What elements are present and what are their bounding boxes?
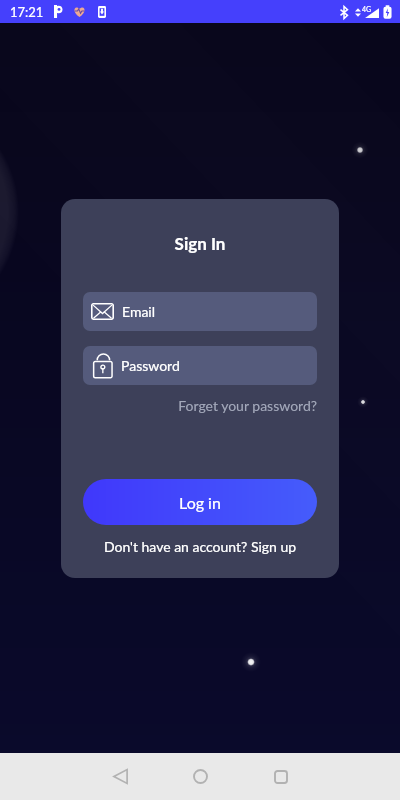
staticText: Log in <box>179 493 221 512</box>
staticText: 17:21 <box>10 4 44 20</box>
button[interactable]: Recent apps <box>249 753 313 800</box>
button[interactable]: Back <box>88 753 152 800</box>
staticText: Password <box>121 357 180 374</box>
button[interactable]: Home <box>168 753 232 800</box>
staticText: 4G <box>362 5 372 13</box>
button[interactable]: Don't have an account? Sign up <box>61 538 339 555</box>
button[interactable]: Forget your password? <box>83 397 317 414</box>
staticText: Sign In <box>61 233 339 253</box>
button[interactable]: Log in <box>83 479 317 525</box>
staticText: Email <box>122 303 156 320</box>
button[interactable]: Password <box>83 346 317 385</box>
button[interactable]: Email <box>83 292 317 331</box>
